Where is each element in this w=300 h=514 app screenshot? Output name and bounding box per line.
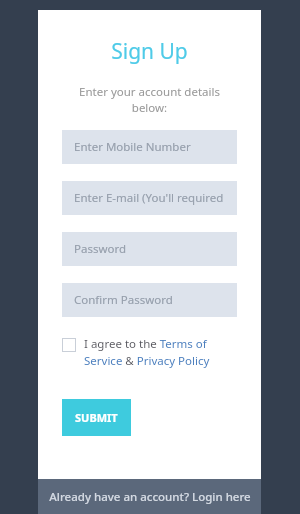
button[interactable]: Enter Mobile Number <box>62 130 237 164</box>
button[interactable]: I agree to the Terms of Service & Privac… <box>84 336 237 368</box>
staticText: Already have an account? Login here <box>49 489 251 505</box>
staticText: SUBMIT <box>75 410 118 425</box>
staticText: Enter E-mail (You'll required to <box>74 190 237 206</box>
button[interactable]: Enter E-mail (You'll required to <box>62 181 237 215</box>
staticText: Password <box>74 241 127 257</box>
staticText: Sign Up <box>111 37 188 66</box>
staticText: Confirm Password <box>74 292 173 308</box>
button[interactable]: Password <box>62 232 237 266</box>
button[interactable]: Confirm Password <box>62 283 237 317</box>
staticText: Enter Mobile Number <box>74 139 191 155</box>
button[interactable]: Agree to terms checkbox <box>62 338 76 352</box>
button[interactable]: Already have an account? Login here <box>38 479 261 514</box>
button[interactable]: SUBMIT <box>62 399 131 436</box>
staticText: Enter your account details below: <box>62 84 237 116</box>
